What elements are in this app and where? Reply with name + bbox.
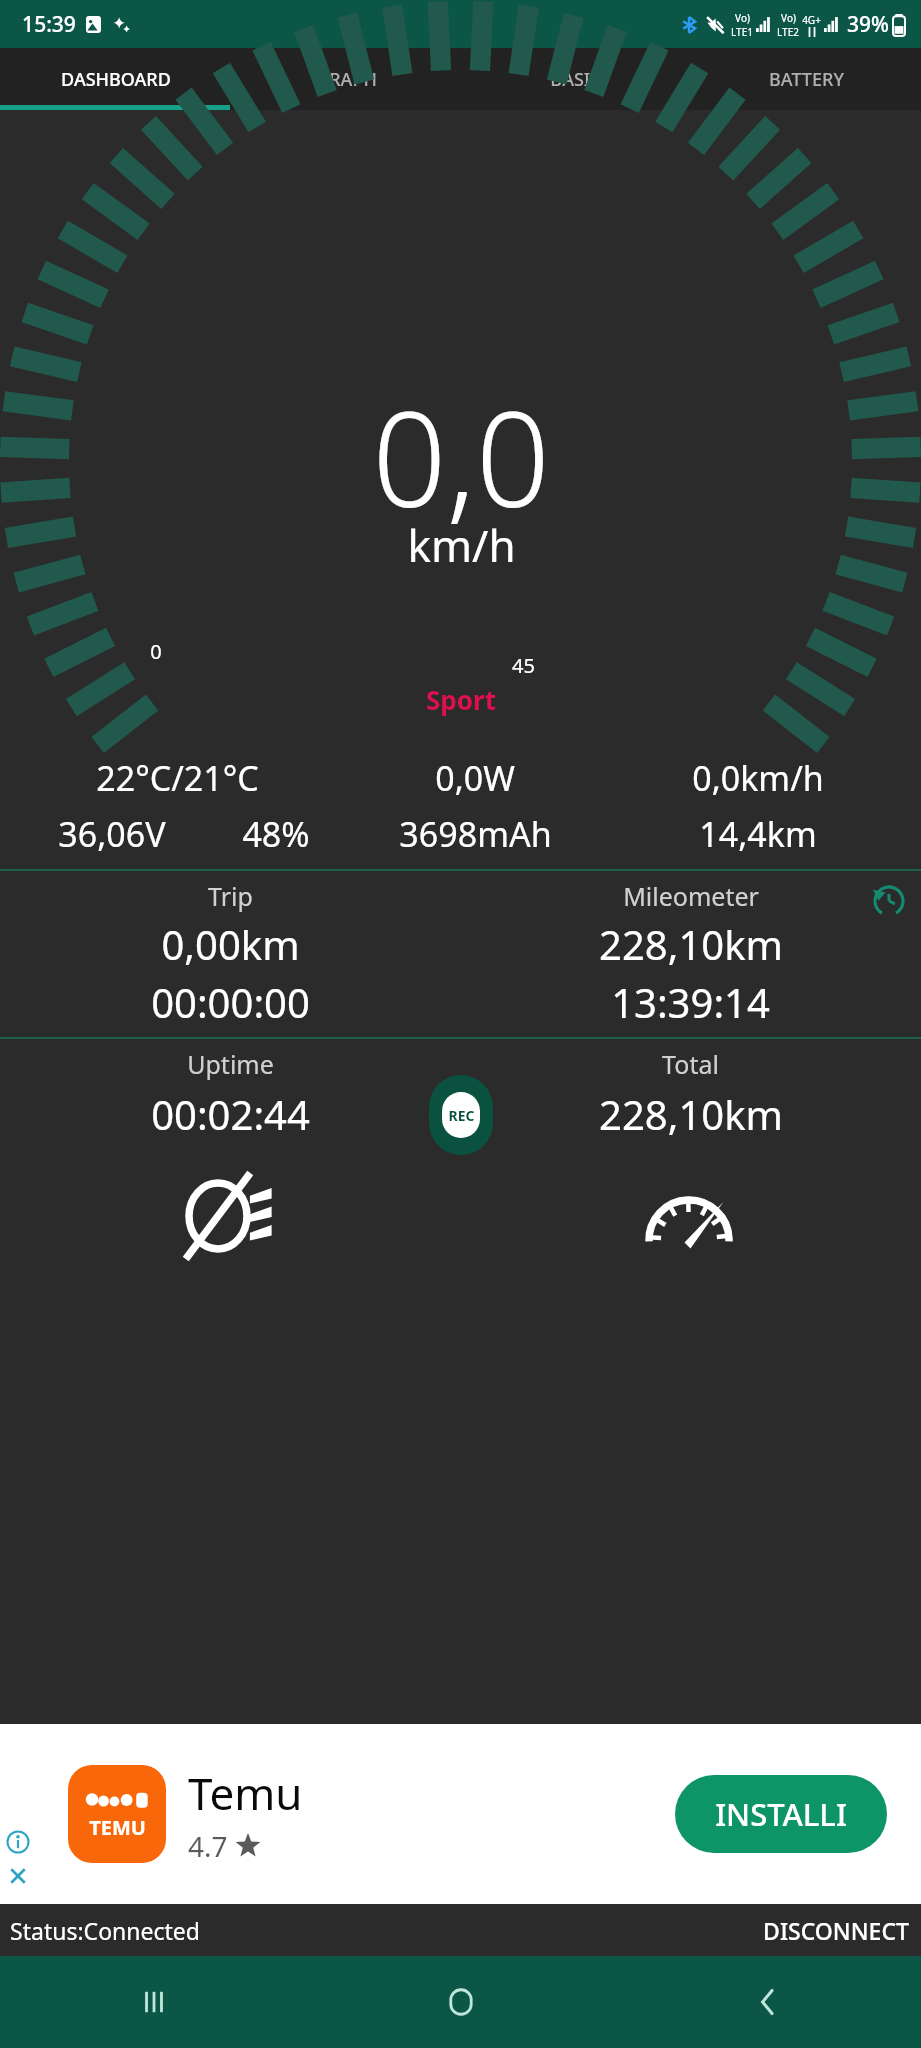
button[interactable]: Recents (0, 1956, 307, 2048)
staticText: Uptime (187, 1047, 274, 1081)
staticText: Trip (208, 879, 253, 913)
button[interactable]: Record (429, 1075, 493, 1155)
button[interactable]: BATTERY (691, 48, 921, 110)
staticText: DASHBOARD (61, 67, 171, 92)
staticText: 45 (512, 652, 535, 679)
staticText: 13:39:14 (611, 975, 770, 1029)
staticText: Vo) (735, 11, 750, 25)
staticText: Sport (426, 682, 496, 717)
staticText: INSTALLI (715, 1793, 847, 1835)
button[interactable]: Mileometer (460, 879, 921, 1029)
staticText: BATTERY (769, 67, 844, 92)
staticText: 14,4km (699, 811, 817, 857)
staticText: 39% (847, 10, 889, 39)
staticText: 48% (242, 811, 310, 857)
staticText: 228,10km (599, 1087, 783, 1141)
staticText: LTE2 (777, 25, 799, 39)
staticText: 3698mAh (399, 811, 552, 857)
staticText: 4G+ (802, 13, 821, 27)
button[interactable]: Speed limit (636, 1161, 746, 1271)
button[interactable]: Ad information (6, 1830, 30, 1854)
button[interactable]: Trip (0, 879, 460, 1029)
button[interactable]: INSTALLI (675, 1775, 887, 1853)
staticText: LTE1 (731, 25, 753, 39)
button[interactable]: Home (307, 1956, 614, 2048)
staticText: 0,0W (435, 755, 515, 801)
button[interactable]: TEMU (0, 1724, 921, 1904)
button[interactable]: Headlight off (175, 1161, 285, 1271)
staticText: DISCONNECT (763, 1915, 909, 1946)
staticText: BASIC (550, 67, 602, 92)
staticText: 0 (150, 638, 162, 665)
staticText: GRAPH (316, 67, 377, 92)
staticText: Vo) (781, 11, 796, 25)
button[interactable]: BASIC (461, 48, 691, 110)
staticText: Mileometer (623, 879, 759, 913)
staticText: 36,06V (58, 811, 166, 857)
staticText: 4.7 (188, 1827, 228, 1865)
staticText: 0,0km/h (692, 755, 824, 801)
staticText: 22°C/21°C (96, 755, 259, 801)
button[interactable]: DISCONNECT (751, 1907, 921, 1954)
staticText: 00:02:44 (151, 1087, 310, 1141)
staticText: Status:Connected (10, 1915, 200, 1946)
button[interactable]: GRAPH (231, 48, 461, 110)
staticText: km/h (407, 515, 516, 575)
button[interactable]: History (865, 877, 913, 925)
staticText: 0,0 (372, 368, 550, 545)
button[interactable]: DASHBOARD (0, 48, 231, 110)
staticText: REC (448, 1106, 475, 1125)
staticText: 00:00:00 (151, 975, 310, 1029)
staticText: Total (662, 1047, 719, 1081)
button[interactable]: Close ad (6, 1864, 30, 1888)
button[interactable]: Back (614, 1956, 921, 2048)
staticText: 15:39 (22, 10, 76, 39)
staticText: 0,00km (161, 917, 300, 971)
staticText: TEMU (89, 1814, 146, 1841)
staticText: Temu (188, 1763, 303, 1823)
staticText: 228,10km (599, 917, 783, 971)
